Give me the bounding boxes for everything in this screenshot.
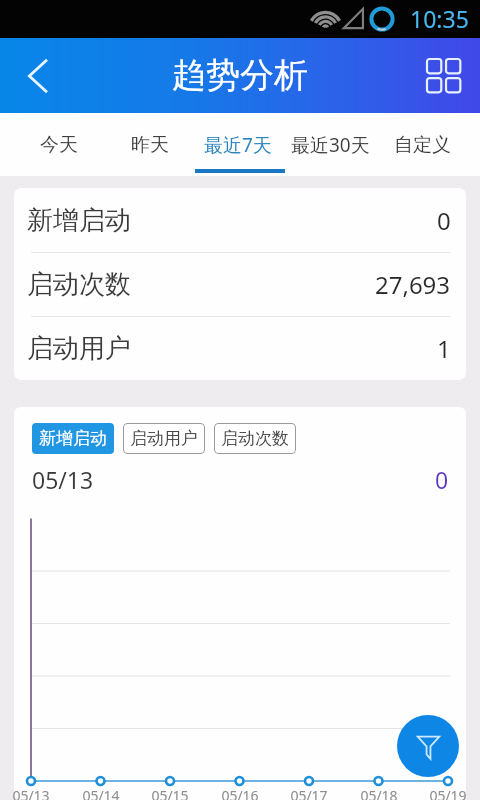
button[interactable]: 启动用户 [14, 316, 466, 380]
button[interactable]: 启动次数 [214, 423, 296, 454]
button[interactable]: Back [7, 38, 69, 113]
staticText: 今天 [40, 133, 78, 157]
button[interactable]: 最近7天 [192, 113, 284, 176]
staticText: 05/15 [147, 786, 193, 800]
staticText: 0 [435, 464, 449, 495]
button[interactable]: 昨天 [104, 113, 196, 176]
staticText: 趋势分析 [172, 54, 308, 97]
staticText: 05/13 [32, 464, 94, 495]
staticText: 05/14 [78, 786, 124, 800]
button[interactable]: Grid view [412, 38, 476, 113]
button[interactable]: 启动次数 [14, 252, 466, 316]
button[interactable]: 启动用户 [123, 423, 205, 454]
button[interactable]: 新增启动 [14, 188, 466, 252]
staticText: 启动次数 [27, 268, 131, 301]
staticText: 27,693 [375, 268, 451, 301]
staticText: 05/17 [286, 786, 332, 800]
staticText: 昨天 [131, 133, 169, 157]
button[interactable]: 今天 [13, 113, 105, 176]
staticText: 05/16 [217, 786, 263, 800]
staticText: 05/13 [8, 786, 54, 800]
staticText: 05/19 [425, 786, 471, 800]
staticText: 新增启动 [39, 428, 107, 449]
staticText: 最近7天 [204, 132, 272, 158]
staticText: 启动用户 [27, 332, 131, 365]
button[interactable]: Filter [397, 715, 459, 777]
staticText: 启动用户 [130, 428, 198, 449]
staticText: 05/18 [356, 786, 402, 800]
staticText: 新增启动 [27, 204, 131, 237]
staticText: 1 [437, 332, 451, 365]
staticText: 最近30天 [291, 132, 370, 158]
staticText: 自定义 [394, 133, 451, 157]
button[interactable]: 自定义 [376, 113, 468, 176]
button[interactable]: 新增启动 [32, 423, 114, 454]
staticText: 0 [437, 204, 451, 237]
staticText: 10:35 [410, 3, 469, 34]
button[interactable]: 最近30天 [272, 113, 388, 176]
staticText: 启动次数 [221, 428, 289, 449]
